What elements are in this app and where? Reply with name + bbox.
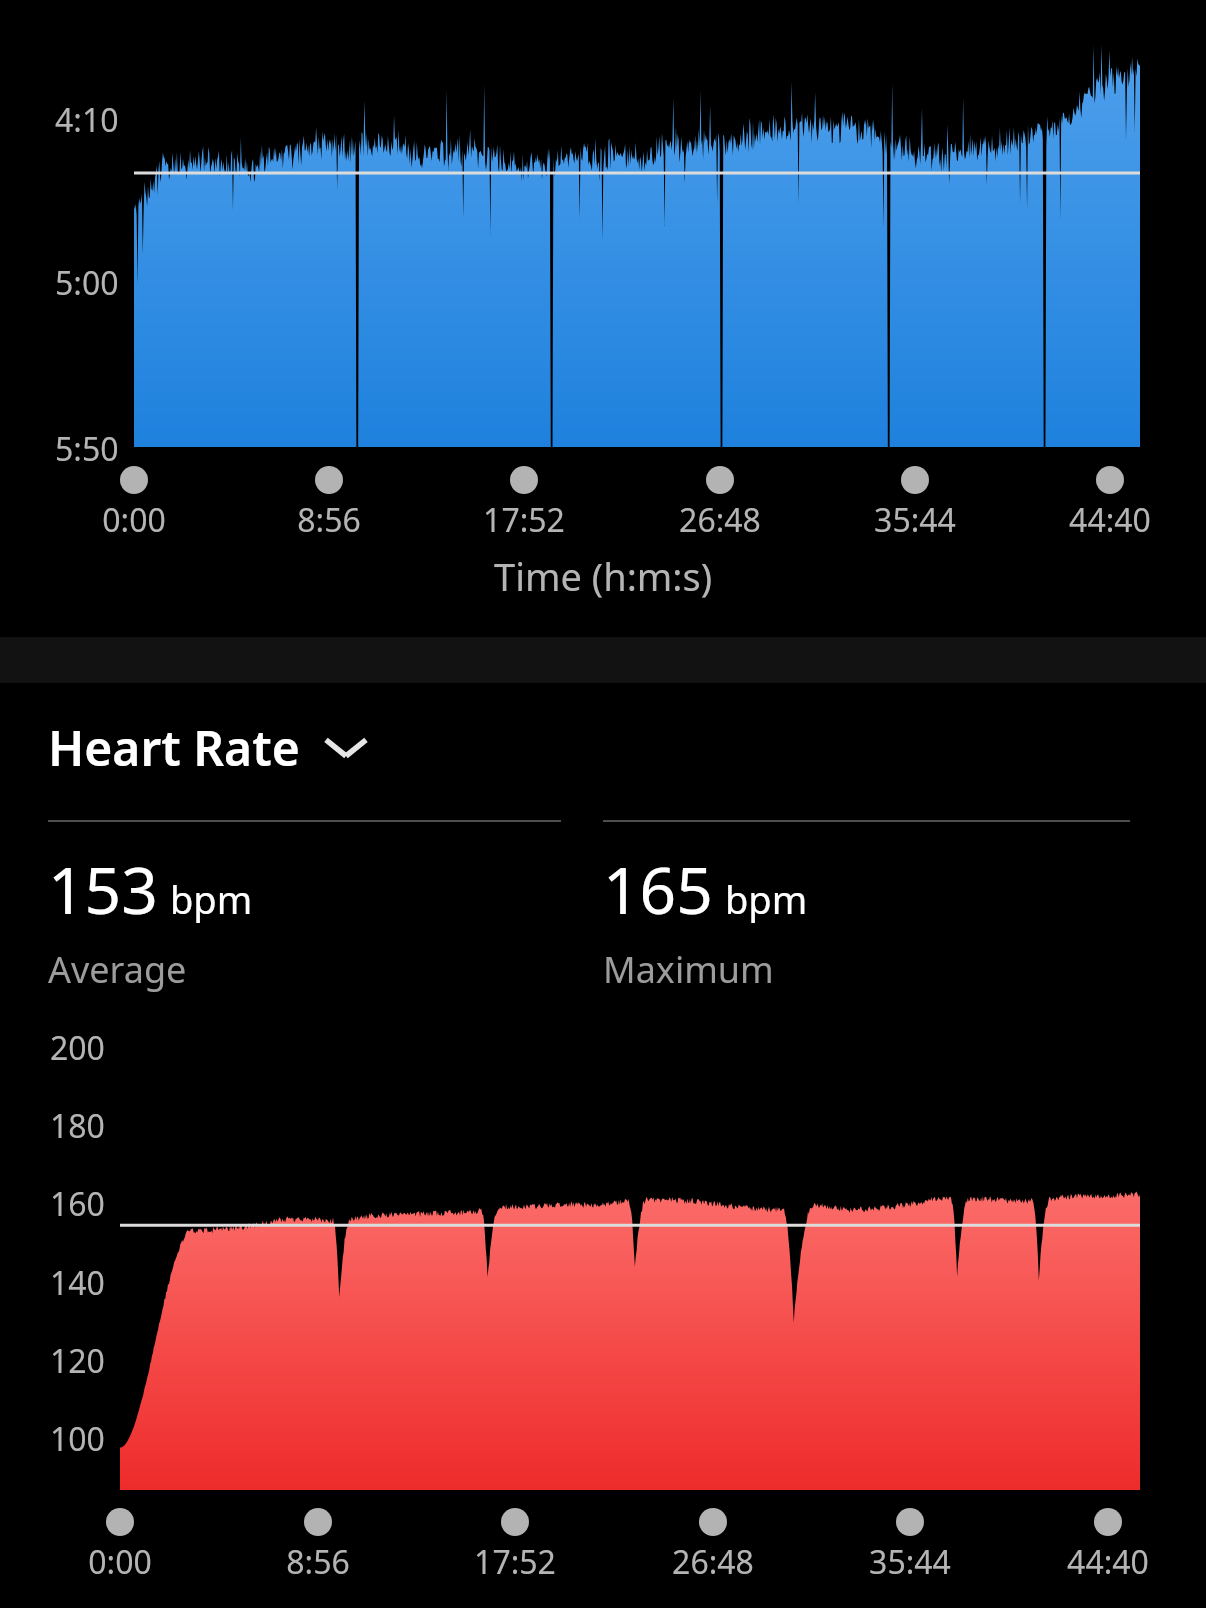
- staticText: 120: [50, 1339, 105, 1383]
- staticText: bpm: [725, 873, 808, 925]
- staticText: 140: [50, 1261, 105, 1305]
- staticText: 0:00: [102, 498, 166, 542]
- staticText: 17:52: [474, 1540, 556, 1584]
- staticText: Average: [48, 945, 187, 994]
- staticText: Time (h:m:s): [494, 550, 713, 602]
- staticText: Heart Rate: [48, 715, 300, 780]
- button[interactable]: 165: [603, 820, 1130, 994]
- staticText: 200: [50, 1026, 105, 1070]
- staticText: 35:44: [869, 1540, 951, 1584]
- staticText: 8:56: [286, 1540, 350, 1584]
- staticText: 100: [50, 1417, 105, 1461]
- staticText: 44:40: [1067, 1540, 1149, 1584]
- staticText: 153: [48, 846, 158, 933]
- staticText: 26:48: [672, 1540, 754, 1584]
- staticText: 44:40: [1069, 498, 1151, 542]
- staticText: 5:50: [55, 427, 119, 471]
- staticText: 4:10: [55, 98, 119, 142]
- staticText: 5:00: [55, 261, 119, 305]
- staticText: 160: [50, 1182, 105, 1226]
- staticText: 35:44: [874, 498, 956, 542]
- staticText: 17:52: [483, 498, 565, 542]
- staticText: 26:48: [679, 498, 761, 542]
- staticText: 180: [50, 1104, 105, 1148]
- staticText: bpm: [170, 873, 253, 925]
- staticText: 165: [603, 846, 713, 933]
- staticText: 0:00: [88, 1540, 152, 1584]
- staticText: 8:56: [297, 498, 361, 542]
- button[interactable]: Heart Rate: [0, 708, 1206, 786]
- staticText: Maximum: [603, 945, 774, 994]
- other: Expand Heart Rate: [322, 732, 370, 762]
- button[interactable]: 153: [48, 820, 561, 994]
